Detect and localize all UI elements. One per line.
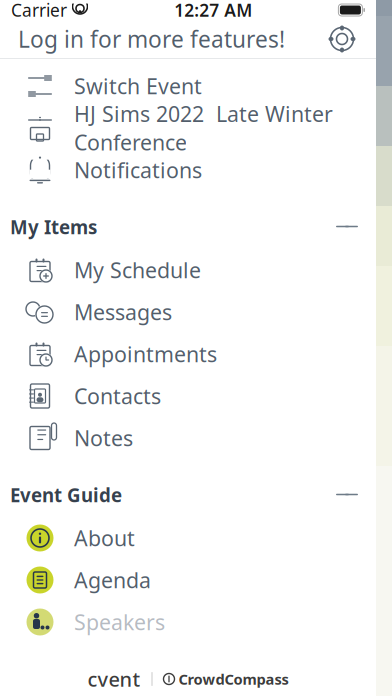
button[interactable]: Switch Event: [0, 65, 376, 107]
staticText: Log in for more features!: [18, 24, 285, 54]
staticText: HJ Sims 2022 Late Winter Conference: [74, 100, 333, 156]
button[interactable]: My Items: [0, 205, 376, 249]
button[interactable]: Settings: [328, 20, 376, 58]
button[interactable]: Event Guide: [0, 473, 376, 517]
button[interactable]: HJ Sims 2022 Late Winter Conference: [0, 107, 376, 149]
staticText: Appointments: [74, 340, 217, 368]
staticText: Contacts: [74, 382, 161, 410]
button[interactable]: Notifications: [0, 149, 376, 191]
staticText: Speakers: [74, 608, 165, 636]
button[interactable]: Notes: [0, 417, 376, 459]
staticText: 12:27 AM: [174, 0, 252, 21]
staticText: CrowdCompass: [178, 669, 288, 689]
button[interactable]: Contacts: [0, 375, 376, 417]
staticText: Notifications: [74, 156, 202, 184]
staticText: Switch Event: [74, 72, 202, 100]
staticText: Event Guide: [10, 483, 122, 507]
staticText: My Items: [10, 215, 97, 239]
button[interactable]: Messages: [0, 291, 376, 333]
staticText: Notes: [74, 424, 133, 452]
staticText: About: [74, 524, 135, 552]
button[interactable]: Appointments: [0, 333, 376, 375]
staticText: My Schedule: [74, 256, 201, 284]
staticText: Messages: [74, 298, 172, 326]
staticText: Carrier: [11, 0, 67, 21]
staticText: cvent: [87, 666, 140, 692]
button[interactable]: My Schedule: [0, 249, 376, 291]
button[interactable]: Agenda: [0, 559, 376, 601]
button[interactable]: Log in for more features!: [0, 16, 285, 62]
button[interactable]: Speakers: [0, 601, 376, 643]
staticText: Agenda: [74, 566, 151, 594]
button[interactable]: About: [0, 517, 376, 559]
